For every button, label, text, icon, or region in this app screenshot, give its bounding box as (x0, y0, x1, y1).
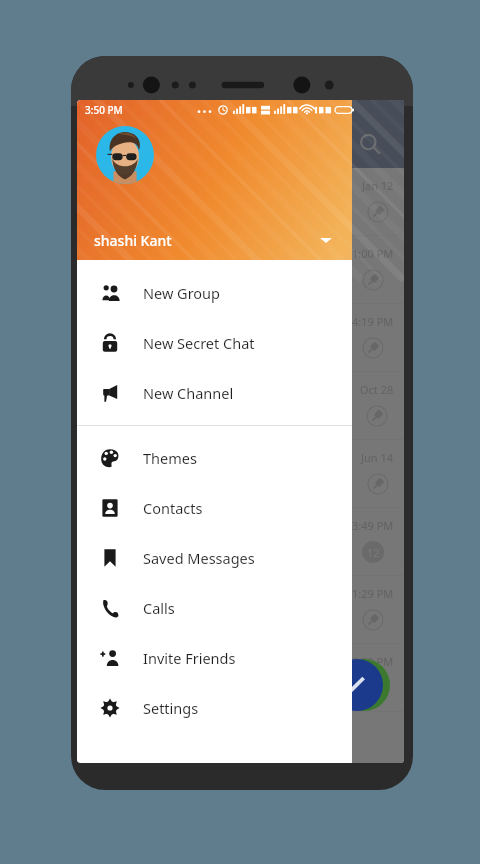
button[interactable]: Contacts (77, 483, 352, 533)
staticText: shashi Kant (94, 231, 172, 250)
staticText: New Group (143, 283, 220, 303)
button[interactable]: Invite Friends (77, 633, 352, 683)
button[interactable]: Oct 28 (77, 372, 404, 440)
button[interactable]: Settings (77, 683, 352, 733)
staticText: Oct 28 (360, 382, 394, 397)
button[interactable]: Search (358, 132, 382, 156)
button[interactable]: 4:19 PM (77, 304, 404, 372)
button[interactable]: shashi Kant (77, 220, 352, 260)
staticText: 3:49 PM (352, 518, 394, 533)
staticText: 1:00 PM (352, 246, 394, 261)
staticText: Jun 14 (361, 450, 394, 465)
button[interactable]: Themes (77, 433, 352, 483)
button[interactable]: New Channel (77, 368, 352, 418)
button[interactable]: Jan 12 (77, 168, 404, 236)
button[interactable]: Profile photo (96, 126, 154, 184)
staticText: New Channel (143, 383, 234, 403)
button[interactable]: New Group (77, 268, 352, 318)
staticText: 2:28 PM (352, 654, 394, 669)
button[interactable]: 1:29 PM (77, 576, 404, 644)
staticText: Invite Friends (143, 648, 236, 668)
button[interactable]: 3:49 PM (77, 508, 404, 576)
staticText: Jan 12 (362, 178, 394, 193)
staticText: Saved Messages (143, 548, 255, 568)
button[interactable]: New Secret Chat (77, 318, 352, 368)
staticText: Themes (143, 448, 197, 468)
button[interactable]: Calls (77, 583, 352, 633)
staticText: 3:50 PM (85, 103, 123, 117)
button[interactable]: 2:28 PM (77, 644, 404, 712)
button[interactable]: Jun 14 (77, 440, 404, 508)
staticText: 4:19 PM (352, 314, 394, 329)
staticText: 1:29 PM (352, 586, 394, 601)
staticText: 12 (367, 545, 380, 560)
staticText: Calls (143, 598, 175, 618)
button[interactable]: New message (331, 659, 383, 711)
button[interactable]: 1:00 PM (77, 236, 404, 304)
staticText: Contacts (143, 498, 203, 518)
staticText: Settings (143, 698, 199, 718)
staticText: New Secret Chat (143, 333, 255, 353)
button[interactable]: Saved Messages (77, 533, 352, 583)
